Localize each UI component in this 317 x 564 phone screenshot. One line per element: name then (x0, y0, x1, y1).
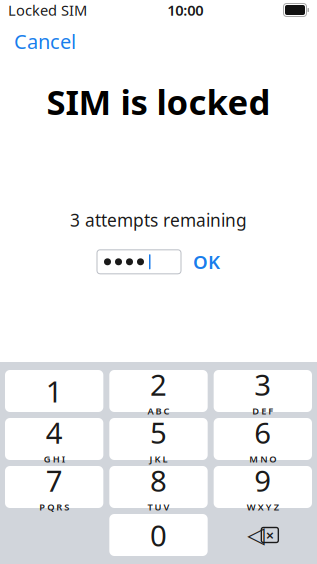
staticText: SIM is locked (46, 79, 270, 125)
button[interactable]: 8 (109, 466, 208, 508)
staticText: 4 (46, 413, 63, 452)
staticText: M N O (249, 453, 276, 465)
button[interactable]: 0 (109, 514, 208, 556)
staticText: 2 (150, 365, 167, 404)
staticText: ◁ (247, 522, 264, 548)
button[interactable]: Delete (214, 514, 312, 556)
staticText: 10:00 (167, 0, 203, 20)
button[interactable]: OK (181, 245, 220, 278)
button[interactable]: 1 (5, 370, 103, 412)
staticText: P Q R S (39, 501, 69, 513)
staticText: 9 (254, 461, 271, 500)
button[interactable]: 6 (214, 418, 312, 460)
staticText: W X Y Z (247, 501, 279, 513)
button[interactable]: 3 (214, 370, 312, 412)
staticText: A B C (147, 405, 169, 417)
staticText: D E F (252, 405, 273, 417)
button[interactable]: 5 (109, 418, 208, 460)
staticText: 1 (46, 371, 63, 410)
staticText: 3 attempts remaining (70, 208, 247, 231)
staticText: 8 (150, 461, 167, 500)
button[interactable]: Cancel (0, 22, 90, 61)
button[interactable]: 7 (5, 466, 103, 508)
staticText: Cancel (14, 28, 76, 55)
staticText: J K L (149, 453, 167, 465)
button[interactable]: 9 (214, 466, 312, 508)
staticText: G H I (44, 453, 65, 465)
staticText: 5 (150, 413, 167, 452)
button[interactable]: 2 (109, 370, 208, 412)
staticText: 6 (254, 413, 271, 452)
staticText: 3 (254, 365, 271, 404)
staticText: T U V (147, 501, 169, 513)
staticText: × (266, 525, 274, 545)
staticText: OK (193, 249, 220, 274)
staticText: Locked SIM (8, 0, 87, 20)
staticText: 7 (46, 461, 63, 500)
staticText: 0 (150, 515, 167, 554)
button[interactable]: 4 (5, 418, 103, 460)
